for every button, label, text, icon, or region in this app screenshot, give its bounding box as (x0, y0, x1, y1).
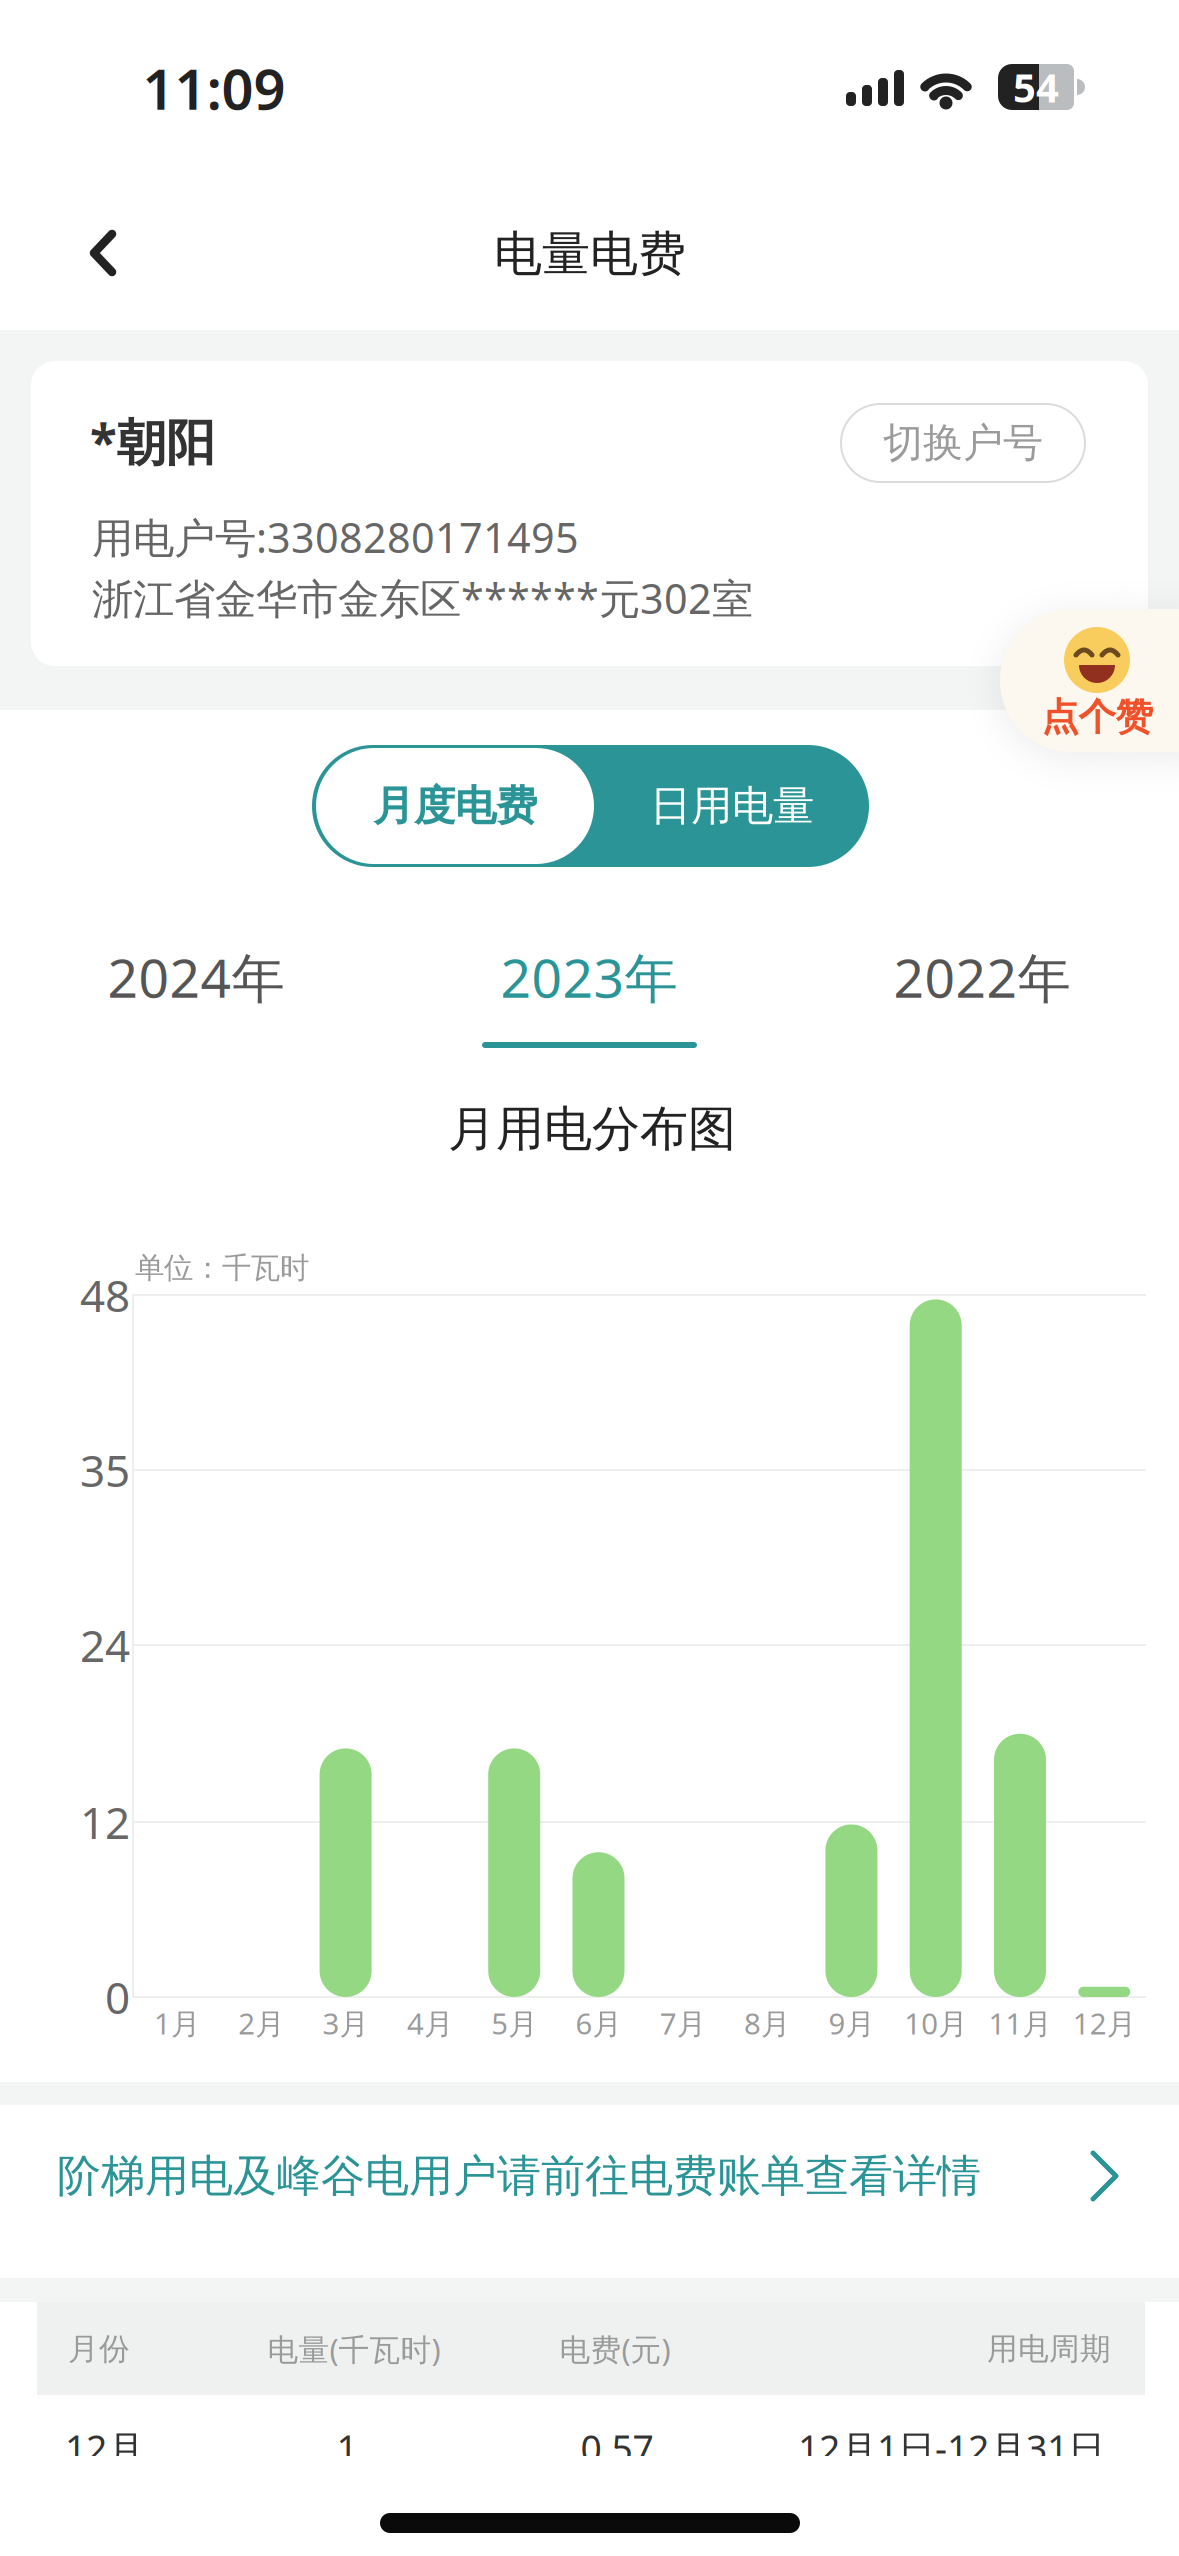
staticText: 5月 (491, 2003, 537, 2042)
staticText: 日用电量 (650, 781, 814, 831)
staticText: 月度电费 (373, 781, 537, 831)
staticText: 12 (80, 1793, 130, 1851)
staticText: 10月 (904, 2003, 967, 2042)
staticText: 6月 (575, 2003, 621, 2042)
staticText: 7月 (660, 2003, 706, 2042)
staticText: 1月 (154, 2003, 200, 2042)
button[interactable]: 日用电量 (593, 745, 870, 867)
staticText: 54 (1013, 60, 1059, 113)
staticText: 月用电分布图 (448, 1099, 736, 1158)
button[interactable]: Back (84, 226, 124, 282)
staticText: 3月 (323, 2003, 369, 2042)
staticText: 2023年 (500, 942, 677, 1012)
staticText: 浙江省金华市金东区******元302室 (92, 571, 753, 625)
staticText: 单位：千瓦时 (135, 1250, 309, 1286)
staticText: 9月 (828, 2003, 874, 2042)
staticText: 0 (105, 1968, 130, 2026)
button[interactable]: 切换户号 (840, 403, 1086, 483)
staticText: 11月 (988, 2003, 1051, 2042)
staticText: 月份 (68, 2330, 130, 2368)
staticText: 24 (80, 1616, 130, 1674)
staticText: 电费(元) (559, 2329, 670, 2369)
button[interactable]: 点个赞 (1000, 609, 1179, 752)
staticText: 点个赞 (1041, 694, 1152, 740)
staticText: 11:09 (142, 51, 285, 125)
staticText: 12月 (65, 2423, 144, 2473)
button[interactable]: 2023年 (439, 932, 739, 1022)
button[interactable]: 月度电费 (316, 748, 594, 864)
staticText: 用电周期 (987, 2330, 1111, 2368)
staticText: 35 (80, 1441, 130, 1499)
staticText: 48 (80, 1266, 130, 1324)
button[interactable]: 2024年 (46, 932, 346, 1022)
button[interactable]: 2022年 (832, 932, 1132, 1022)
staticText: 2024年 (107, 942, 284, 1012)
staticText: 电量(千瓦时) (267, 2329, 440, 2369)
staticText: 12月1日-12月31日 (798, 2423, 1105, 2473)
button[interactable]: 阶梯用电及峰谷电用户请前往电费账单查看详情 (0, 2105, 1179, 2280)
staticText: 阶梯用电及峰谷电用户请前往电费账单查看详情 (57, 2149, 981, 2203)
staticText: *朝阳 (90, 408, 215, 474)
staticText: 2022年 (893, 942, 1070, 1012)
staticText: 4月 (407, 2003, 453, 2042)
staticText: 用电户号:3308280171495 (92, 510, 579, 564)
staticText: 0.57 (580, 2423, 653, 2473)
staticText: 电量电费 (494, 224, 686, 283)
staticText: 2月 (238, 2003, 284, 2042)
staticText: 1 (336, 2423, 357, 2473)
staticText: 切换户号 (883, 418, 1043, 467)
staticText: 8月 (744, 2003, 790, 2042)
staticText: 12月 (1073, 2003, 1136, 2042)
